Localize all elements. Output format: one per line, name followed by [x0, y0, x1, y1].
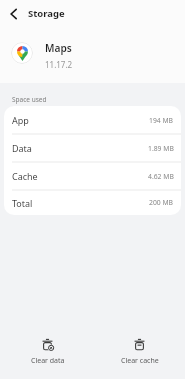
staticText: App — [12, 114, 29, 126]
staticText: Clear cache — [121, 356, 159, 366]
staticText: Maps — [45, 41, 72, 55]
staticText: Clear data — [31, 356, 65, 366]
staticText: 200 MB — [149, 198, 174, 207]
button[interactable]: App — [4, 106, 181, 134]
staticText: Data — [12, 142, 32, 154]
staticText: Cache — [12, 170, 38, 182]
button[interactable] — [0, 0, 28, 27]
staticText: 11.17.2 — [45, 59, 73, 70]
button[interactable]: Cache — [4, 162, 181, 190]
button[interactable]: Clear cache — [108, 338, 171, 366]
staticText: Storage — [28, 7, 65, 20]
staticText: Space used — [12, 95, 47, 104]
staticText: 4.62 MB — [148, 172, 174, 181]
button[interactable]: Total — [4, 190, 181, 215]
staticText: Total — [12, 197, 33, 209]
button[interactable]: Clear data — [16, 338, 79, 366]
staticText: 194 MB — [149, 116, 174, 125]
button[interactable]: Data — [4, 134, 181, 162]
staticText: 1.89 MB — [148, 144, 174, 153]
